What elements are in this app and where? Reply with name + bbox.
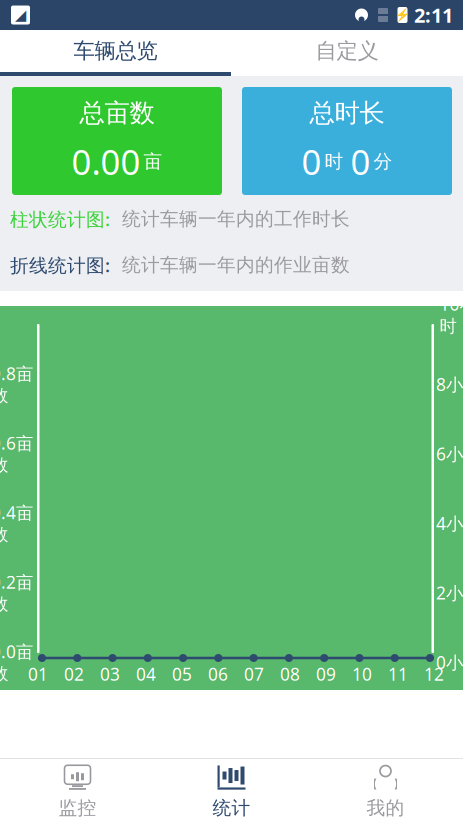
staticText: 0 [350,138,370,184]
staticText: 06 [208,662,228,685]
staticText: 统计车辆一年内的工作时长 [122,207,350,230]
button[interactable]: 总时长 [242,87,452,195]
staticText: 0.0亩数 [0,640,33,684]
staticText: 0 [301,138,321,184]
staticText: 08 [280,662,300,685]
button[interactable]: 总亩数 [12,87,222,195]
staticText: 统计车辆一年内的作业亩数 [122,253,350,276]
staticText: 07 [244,662,264,685]
staticText: 监控 [58,796,96,819]
staticText: 0.8亩数 [0,362,33,406]
staticText: 4小时 [436,512,463,535]
staticText: ◢ [15,7,26,23]
staticText: 02 [64,662,84,685]
staticText: 2:11 [414,2,453,28]
button[interactable]: 统计 [154,759,308,825]
staticText: 04 [136,662,156,685]
staticText: 8小时 [436,373,463,396]
staticText: 0.6亩数 [0,432,33,476]
staticText: 0.4亩数 [0,501,33,545]
staticText: 分 [373,150,392,173]
staticText: 2小时 [436,581,463,604]
staticText: 6小时 [436,442,463,465]
staticText: 折线统计图: [10,253,110,277]
staticText: 0小时 [436,651,463,674]
staticText: 12 [424,662,444,685]
staticText: 总时长 [309,97,384,128]
button[interactable]: 车辆总览 [0,30,231,72]
staticText: 我的 [366,796,404,819]
staticText: 03 [100,662,120,685]
staticText: 10小时 [439,293,463,337]
staticText: 01 [28,662,48,685]
staticText: 总亩数 [79,97,154,128]
staticText: 0.00 [71,138,140,184]
button[interactable]: 自定义 [231,30,463,72]
staticText: 柱状统计图: [10,207,110,231]
staticText: 车辆总览 [73,38,157,64]
staticText: 10 [352,662,372,685]
staticText: 统计 [212,796,250,819]
staticText: 09 [316,662,336,685]
staticText: 时 [324,150,343,173]
staticText: ⚡ [395,8,410,22]
button[interactable]: 监控 [0,759,154,825]
staticText: 亩 [143,150,162,173]
staticText: 05 [172,662,192,685]
staticText: 11 [388,662,408,685]
staticText: 0.2亩数 [0,571,33,615]
button[interactable]: 我的 [308,759,462,825]
staticText: 自定义 [315,38,378,64]
